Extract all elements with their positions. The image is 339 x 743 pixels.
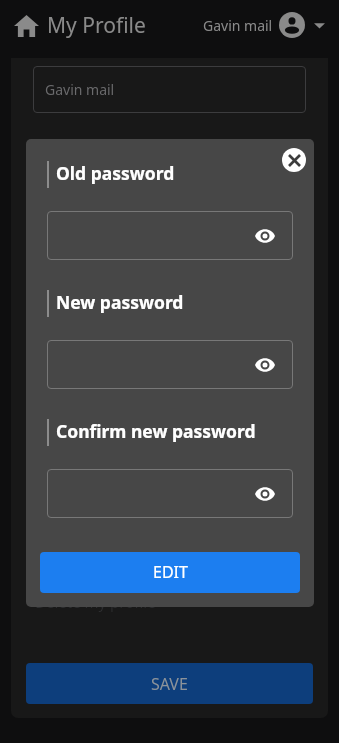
staticText: EDIT: [153, 561, 188, 583]
button[interactable]: Gavin mail: [33, 66, 306, 113]
button[interactable]: Toggle password visibility: [47, 340, 293, 389]
button[interactable]: Delete my profile: [35, 592, 156, 612]
staticText: Gavin mail: [203, 16, 273, 35]
staticText: Gavin mail: [45, 80, 115, 99]
button[interactable]: EDIT: [40, 552, 300, 593]
button[interactable]: My Profile: [14, 11, 150, 40]
button[interactable]: SAVE: [26, 663, 313, 704]
button[interactable]: Toggle password visibility: [253, 482, 277, 506]
button[interactable]: Toggle password visibility: [47, 469, 293, 518]
button[interactable]: Toggle password visibility: [253, 353, 277, 377]
button[interactable]: Toggle password visibility: [47, 211, 293, 260]
button[interactable]: Gavin mail: [203, 12, 325, 38]
button[interactable]: Close: [282, 148, 306, 172]
staticText: Old password: [56, 161, 175, 185]
staticText: Confirm new password: [56, 419, 256, 443]
staticText: New password: [56, 290, 184, 314]
button[interactable]: Toggle password visibility: [253, 224, 277, 248]
staticText: My Profile: [47, 11, 146, 40]
staticText: SAVE: [151, 673, 188, 695]
